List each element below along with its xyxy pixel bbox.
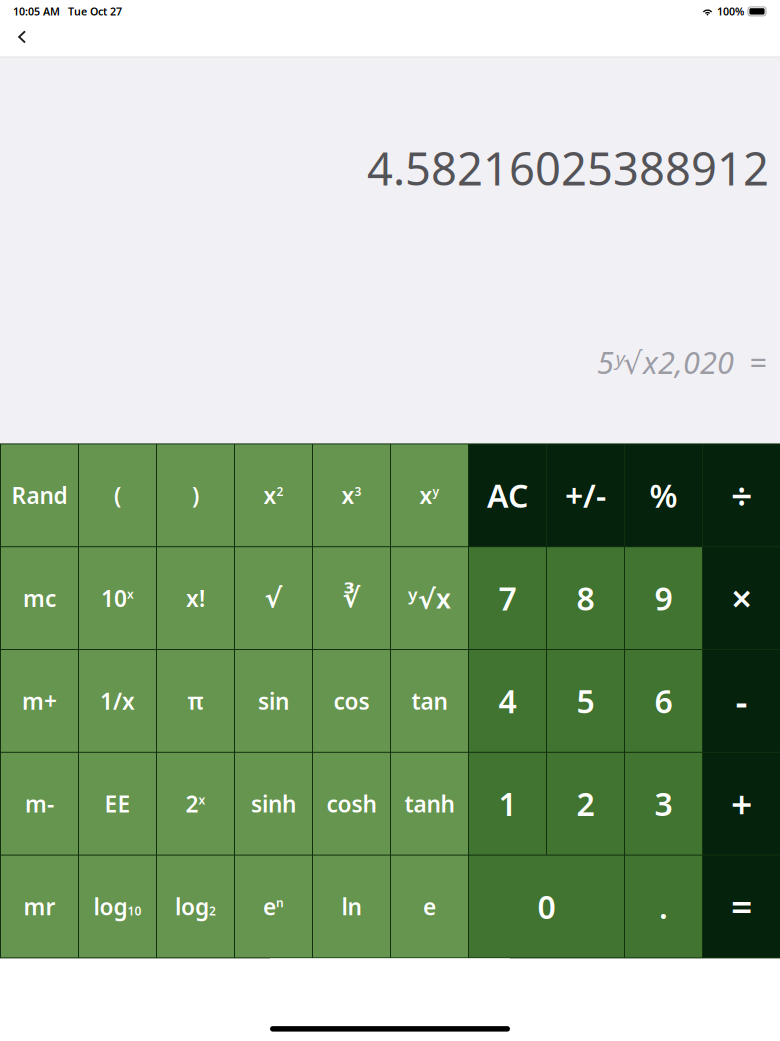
staticText: . — [659, 885, 668, 928]
button[interactable]: Back — [0, 22, 40, 56]
button[interactable]: m- — [1, 753, 78, 855]
button[interactable]: x — [235, 444, 312, 546]
staticText: 2 — [209, 903, 216, 919]
button[interactable]: % — [625, 444, 702, 546]
button[interactable]: sinh — [235, 753, 312, 855]
staticText: sin — [258, 686, 289, 716]
staticText: 1 — [498, 782, 516, 825]
button[interactable]: ) — [157, 444, 234, 546]
button[interactable]: log — [79, 856, 156, 957]
staticText: 10 — [101, 583, 127, 613]
button[interactable]: 3 — [625, 753, 702, 855]
staticText: cosh — [326, 789, 376, 819]
staticText: n — [276, 895, 284, 910]
button[interactable]: Rand — [1, 444, 78, 546]
staticText: 2 — [576, 782, 594, 825]
button[interactable]: 5 — [547, 650, 624, 752]
button[interactable]: log — [157, 856, 234, 957]
button[interactable]: 0 — [469, 856, 624, 957]
staticText: ʸ√x — [408, 580, 451, 616]
staticText: π — [187, 686, 203, 716]
staticText: 3 — [354, 483, 361, 499]
button[interactable]: . — [625, 856, 702, 957]
staticText: ÷ — [731, 470, 752, 520]
button[interactable]: +/- — [547, 444, 624, 546]
staticText: + — [731, 779, 752, 828]
staticText: AC — [487, 474, 528, 517]
staticText: 2 — [185, 789, 198, 819]
button[interactable]: mc — [1, 547, 78, 649]
staticText: +/- — [565, 474, 606, 517]
button[interactable]: 7 — [469, 547, 546, 649]
button[interactable]: - — [703, 650, 780, 752]
button[interactable]: 4 — [469, 650, 546, 752]
button[interactable]: √ — [235, 547, 312, 649]
button[interactable]: e — [235, 856, 312, 957]
staticText: 3 — [654, 782, 672, 825]
button[interactable]: × — [703, 547, 780, 649]
button[interactable]: π — [157, 650, 234, 752]
button[interactable]: ÷ — [703, 444, 780, 546]
button[interactable]: 6 — [625, 650, 702, 752]
staticText: 10 — [127, 903, 141, 919]
staticText: x — [127, 586, 134, 602]
staticText: × — [731, 573, 752, 623]
staticText: 6 — [654, 680, 672, 722]
staticText: 2 — [276, 483, 283, 499]
button[interactable]: ( — [79, 444, 156, 546]
button[interactable]: x! — [157, 547, 234, 649]
staticText: EE — [104, 789, 130, 819]
staticText: m+ — [22, 686, 57, 716]
button[interactable]: 8 — [547, 547, 624, 649]
staticText: x — [263, 480, 276, 510]
staticText: e — [423, 891, 436, 921]
staticText: √ — [264, 583, 282, 613]
staticText: e — [263, 891, 276, 921]
button[interactable]: 1 — [469, 753, 546, 855]
staticText: cos — [333, 686, 369, 716]
staticText: mr — [23, 891, 55, 921]
staticText: 8 — [576, 577, 594, 619]
staticText: x — [341, 480, 354, 510]
staticText: sinh — [251, 789, 296, 819]
staticText: ln — [341, 891, 361, 921]
button[interactable]: sin — [235, 650, 312, 752]
staticText: m- — [25, 789, 54, 819]
button[interactable]: = — [703, 856, 780, 957]
staticText: - — [735, 676, 747, 726]
button[interactable]: ∛ — [313, 547, 390, 649]
staticText: Rand — [11, 480, 67, 510]
button[interactable]: cos — [313, 650, 390, 752]
button[interactable]: + — [703, 753, 780, 855]
button[interactable]: 10 — [79, 547, 156, 649]
button[interactable]: ʸ√x — [391, 547, 468, 649]
staticText: 7 — [498, 577, 516, 619]
button[interactable]: e — [391, 856, 468, 957]
staticText: mc — [23, 583, 56, 613]
staticText: 100% — [717, 4, 744, 18]
button[interactable]: cosh — [313, 753, 390, 855]
button[interactable]: mr — [1, 856, 78, 957]
button[interactable]: x — [391, 444, 468, 546]
button[interactable]: x — [313, 444, 390, 546]
button[interactable]: 2 — [547, 753, 624, 855]
button[interactable]: 9 — [625, 547, 702, 649]
button[interactable]: 1/x — [79, 650, 156, 752]
staticText: tan — [411, 686, 447, 716]
button[interactable]: m+ — [1, 650, 78, 752]
staticText: 5ʸ√x2,020 — [597, 342, 734, 382]
staticText: 1/x — [100, 686, 135, 716]
staticText: x — [419, 480, 432, 510]
button[interactable]: AC — [469, 444, 546, 546]
staticText: log — [93, 891, 127, 921]
staticText: 4.58216025388912 — [367, 138, 769, 198]
staticText: y — [432, 483, 439, 499]
button[interactable]: ln — [313, 856, 390, 957]
button[interactable]: EE — [79, 753, 156, 855]
staticText: x! — [186, 583, 205, 613]
button[interactable]: tanh — [391, 753, 468, 855]
button[interactable]: 2 — [157, 753, 234, 855]
button[interactable]: tan — [391, 650, 468, 752]
staticText: 4 — [498, 680, 516, 722]
staticText: tanh — [404, 789, 454, 819]
